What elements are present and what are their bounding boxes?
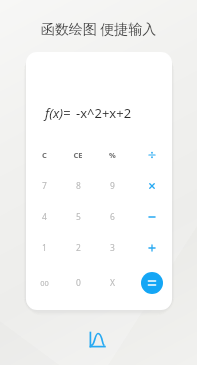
button[interactable]: % — [96, 139, 128, 171]
staticText: X — [110, 277, 115, 289]
staticText: C — [42, 150, 47, 160]
staticText: 8 — [76, 180, 81, 192]
button[interactable]: C — [28, 139, 60, 171]
button[interactable]: 3 — [96, 232, 128, 264]
staticText: 3 — [110, 242, 115, 254]
button[interactable]: Plus — [138, 234, 166, 262]
staticText: 5 — [76, 211, 81, 223]
staticText: f(x)= — [45, 104, 71, 122]
button[interactable]: 9 — [96, 170, 128, 202]
button[interactable]: 0 — [62, 267, 94, 299]
staticText: 7 — [42, 180, 47, 192]
button[interactable]: Equals — [141, 272, 163, 294]
button[interactable]: X — [96, 267, 128, 299]
button[interactable]: Minus — [138, 203, 166, 231]
button[interactable]: 00 — [28, 267, 60, 299]
staticText: 6 — [110, 211, 115, 223]
button[interactable]: 8 — [62, 170, 94, 202]
button[interactable]: Multiply — [138, 172, 166, 200]
staticText: -x^2+x+2 — [76, 104, 132, 122]
staticText: 函数绘图 便捷输入 — [0, 19, 197, 365]
staticText: 9 — [110, 180, 115, 192]
staticText: 1 — [42, 242, 47, 254]
staticText: 2 — [76, 242, 81, 254]
staticText: 00 — [40, 278, 49, 288]
staticText: 4 — [42, 211, 47, 223]
button[interactable]: 6 — [96, 201, 128, 233]
button[interactable]: CE — [62, 139, 94, 171]
button[interactable]: 2 — [62, 232, 94, 264]
button[interactable]: 1 — [28, 232, 60, 264]
button[interactable]: 4 — [28, 201, 60, 233]
button[interactable]: Plot graph — [86, 329, 108, 351]
button[interactable]: 7 — [28, 170, 60, 202]
staticText: % — [109, 150, 116, 160]
staticText: CE — [73, 150, 83, 160]
button[interactable]: Divide — [138, 141, 166, 169]
staticText: 0 — [76, 277, 81, 289]
button[interactable]: 5 — [62, 201, 94, 233]
